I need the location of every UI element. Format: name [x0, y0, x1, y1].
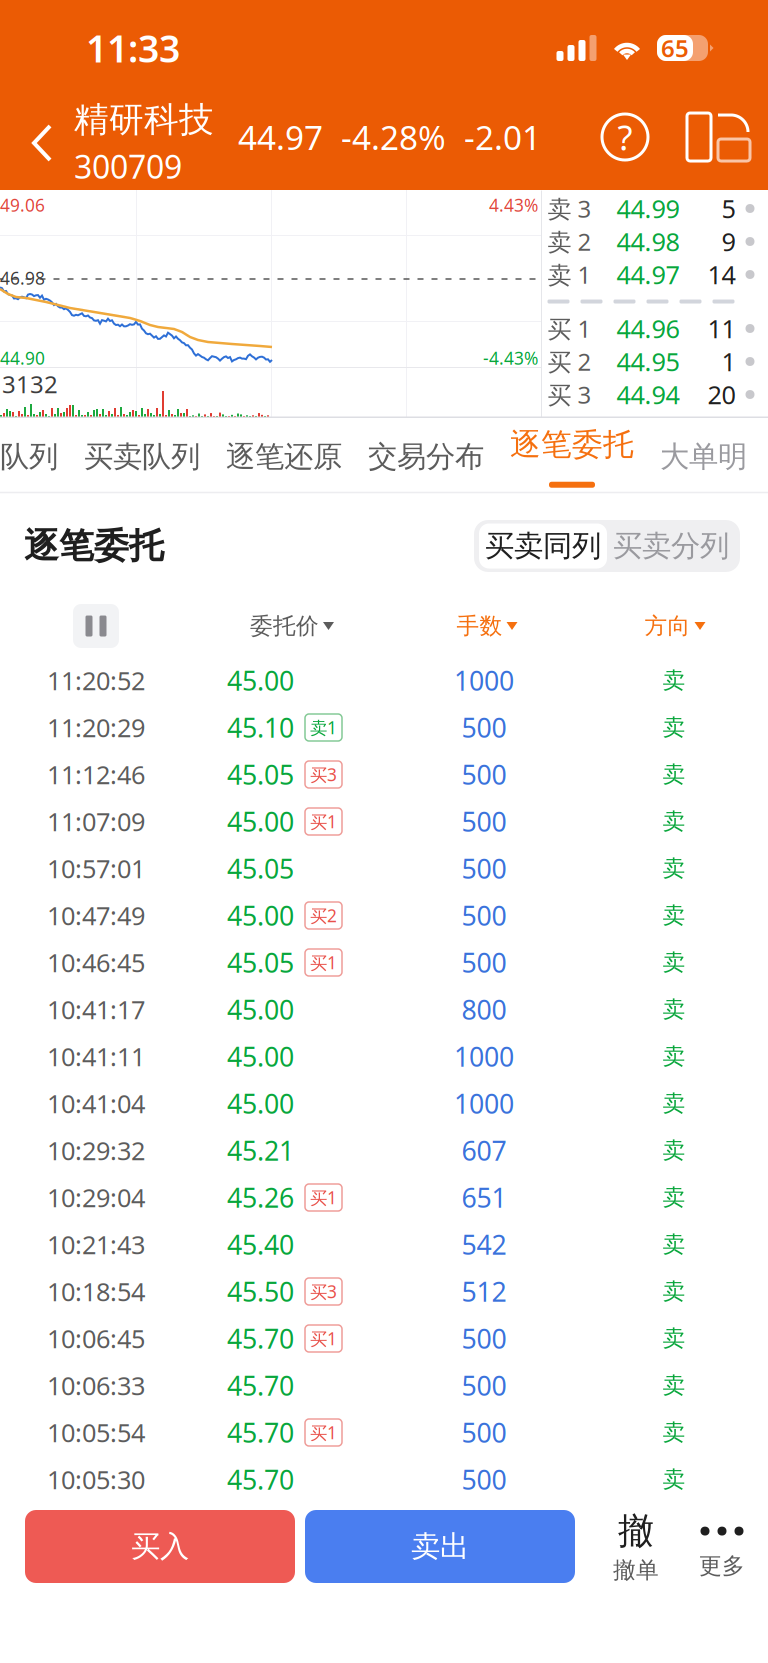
staticText: 买 1	[547, 313, 591, 344]
button[interactable]: 大单明	[634, 422, 747, 492]
button[interactable]: 卖出	[305, 1510, 575, 1583]
staticText: 10:18:54	[47, 1275, 145, 1308]
staticText: 买3	[310, 763, 337, 786]
staticText: 45.40	[227, 1227, 294, 1262]
staticText: 11:12:46	[47, 758, 145, 791]
staticText: 1	[721, 345, 735, 378]
staticText: 45.05	[227, 945, 294, 980]
staticText: 9	[721, 225, 735, 258]
button[interactable]: 队列	[0, 422, 58, 492]
staticText: 方向	[644, 612, 690, 640]
staticText: 卖	[662, 1419, 685, 1446]
button[interactable]: 逐笔委托	[484, 422, 634, 492]
staticText: 500	[461, 1462, 506, 1497]
staticText: 20	[707, 378, 735, 411]
staticText: 44.95	[616, 345, 679, 378]
staticText: 逐笔委托	[510, 426, 634, 463]
button[interactable]: 方向	[582, 597, 768, 655]
staticText: 44.96	[616, 312, 679, 345]
staticText: 队列	[0, 439, 58, 475]
staticText: 卖	[662, 808, 685, 835]
button[interactable]: Layout	[651, 111, 750, 175]
staticText: 1000	[454, 1086, 514, 1121]
staticText: 10:05:30	[47, 1463, 145, 1496]
staticText: 300709	[74, 145, 182, 187]
staticText: 800	[461, 992, 506, 1027]
staticText: 500	[461, 945, 506, 980]
staticText: 500	[461, 757, 506, 792]
staticText: 10:05:54	[47, 1416, 145, 1449]
button[interactable]: 更多	[679, 1510, 765, 1583]
staticText: 买1	[310, 1186, 337, 1209]
staticText: 3132	[2, 368, 58, 400]
staticText: 10:29:32	[47, 1134, 145, 1167]
button[interactable]: Back	[12, 103, 74, 183]
staticText: 买2	[310, 904, 337, 927]
button[interactable]: 委托价	[192, 597, 392, 655]
staticText: 卖	[662, 1372, 685, 1399]
staticText: 11:20:29	[47, 711, 145, 744]
staticText: 45.00	[227, 1086, 294, 1121]
staticText: 1000	[454, 663, 514, 698]
staticText: 500	[461, 804, 506, 839]
staticText: 撤单	[613, 1556, 659, 1584]
button[interactable]: 买卖分列	[607, 523, 735, 568]
staticText: 卖	[662, 1231, 685, 1258]
staticText: 4.43%	[489, 193, 538, 216]
staticText: 10:41:11	[47, 1040, 145, 1073]
button[interactable]: 手数	[392, 597, 582, 655]
staticText: 10:46:45	[47, 946, 145, 979]
button[interactable]: 买卖队列	[58, 422, 200, 492]
button[interactable]: 买入	[25, 1510, 295, 1583]
staticText: 卖	[662, 714, 685, 741]
staticText: 45.70	[227, 1415, 294, 1450]
staticText: 卖	[662, 1043, 685, 1070]
staticText: 45.05	[227, 851, 294, 886]
staticText: 买1	[310, 1421, 337, 1444]
staticText: 卖	[662, 996, 685, 1023]
staticText: 10:06:45	[47, 1322, 145, 1355]
staticText: 45.70	[227, 1368, 294, 1403]
staticText: 卖	[662, 1466, 685, 1493]
staticText: 44.94	[616, 378, 679, 411]
staticText: 44.90	[0, 346, 45, 369]
button[interactable]: Help	[599, 111, 651, 175]
staticText: 512	[461, 1274, 506, 1309]
staticText: 买1	[310, 810, 337, 833]
staticText: 交易分布	[368, 439, 484, 475]
button[interactable]: 逐笔还原	[200, 422, 342, 492]
staticText: 500	[461, 1415, 506, 1450]
staticText: 500	[461, 710, 506, 745]
staticText: 卖1	[310, 716, 337, 739]
staticText: 10:29:04	[47, 1181, 145, 1214]
staticText: 10:57:01	[47, 852, 145, 885]
staticText: 卖	[662, 1184, 685, 1211]
staticText: 卖	[662, 902, 685, 929]
staticText: 卖	[662, 949, 685, 976]
staticText: 买 2	[547, 346, 591, 377]
staticText: 卖	[662, 1137, 685, 1164]
staticText: 卖出	[411, 1528, 469, 1564]
staticText: 45.70	[227, 1462, 294, 1497]
staticText: 49.06	[0, 193, 45, 216]
staticText: 500	[461, 898, 506, 933]
staticText: 买入	[131, 1528, 189, 1564]
staticText: 11:33	[86, 23, 180, 73]
staticText: 大单明	[660, 439, 747, 475]
staticText: 卖	[662, 667, 685, 694]
staticText: 44.97	[616, 258, 679, 291]
button[interactable]: 撤	[593, 1510, 679, 1583]
staticText: 卖	[662, 1090, 685, 1117]
staticText: 10:06:33	[47, 1369, 145, 1402]
staticText: 买卖同列	[485, 528, 601, 564]
button[interactable]: Pause	[0, 597, 192, 655]
staticText: 44.97 -4.28% -2.01	[238, 115, 541, 159]
staticText: 45.26	[227, 1180, 294, 1215]
button[interactable]: 交易分布	[342, 422, 484, 492]
staticText: 卖	[662, 1278, 685, 1305]
staticText: 10:47:49	[47, 899, 145, 932]
staticText: 撤	[618, 1509, 654, 1553]
staticText: 500	[461, 1368, 506, 1403]
staticText: 45.00	[227, 898, 294, 933]
button[interactable]: 买卖同列	[479, 523, 607, 568]
